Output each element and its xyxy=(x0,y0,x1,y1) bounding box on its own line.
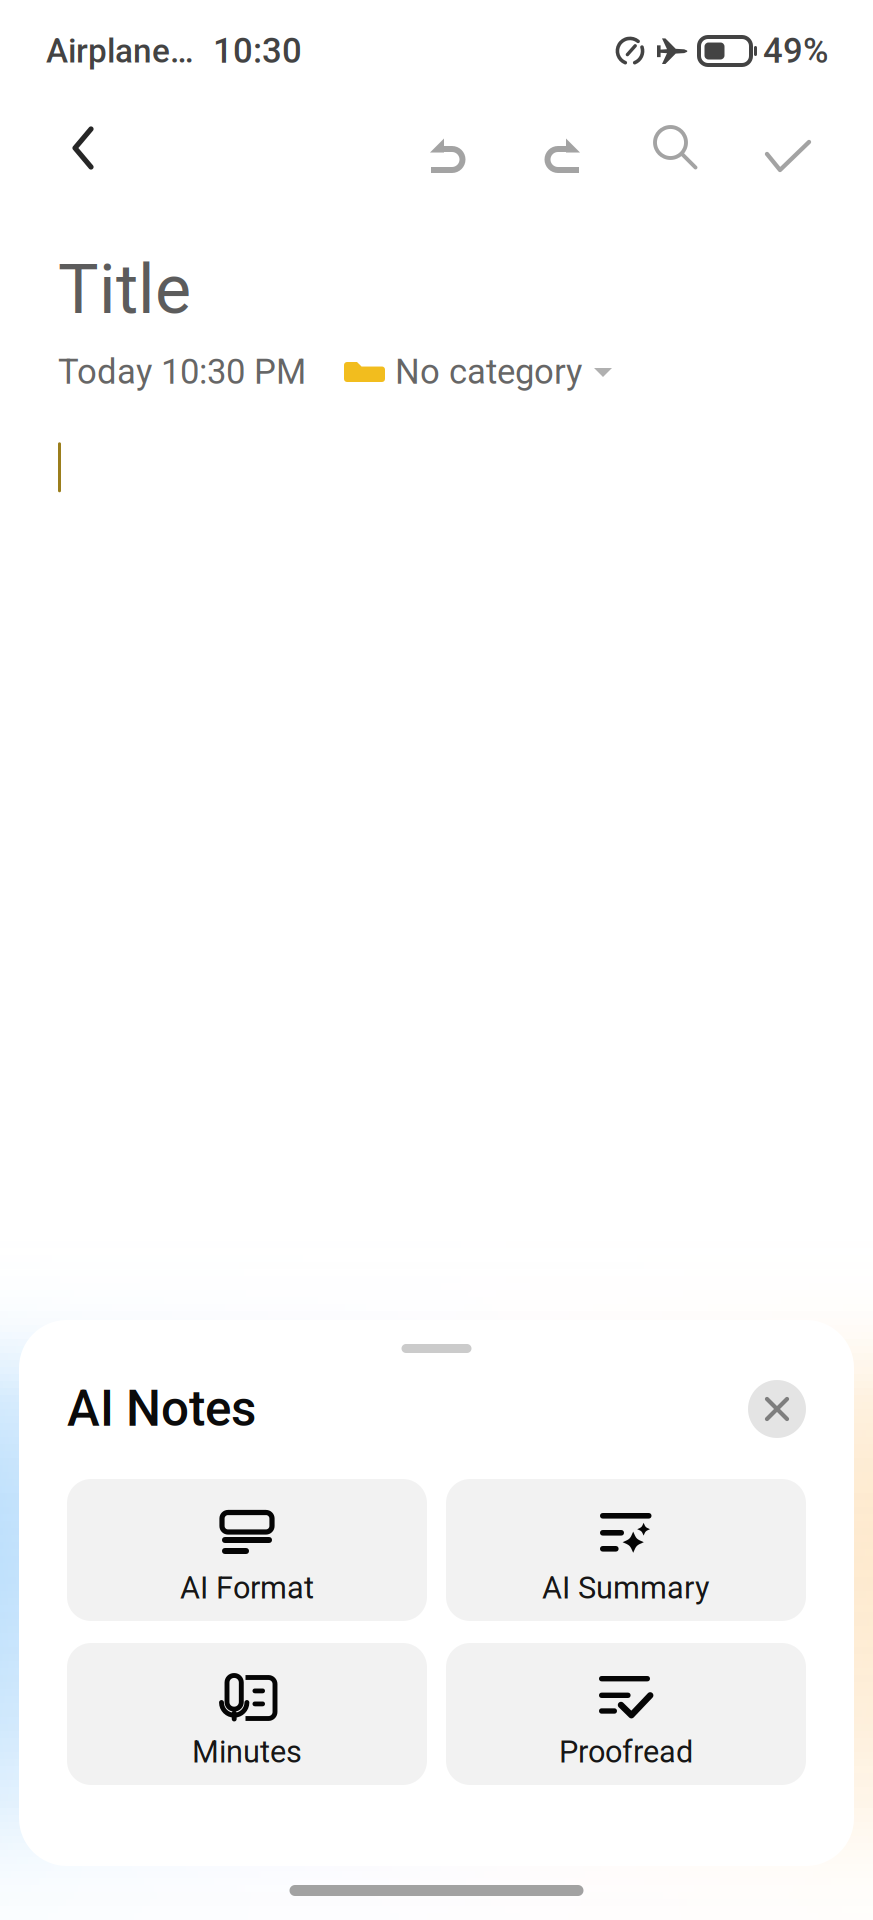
button[interactable]: AI Summary xyxy=(446,1479,806,1621)
staticText: Airplane… xyxy=(46,31,194,71)
button[interactable]: Proofread xyxy=(446,1643,806,1785)
staticText: Proofread xyxy=(559,1734,693,1770)
button[interactable]: Done xyxy=(752,120,824,192)
staticText: 10:30 xyxy=(213,31,302,71)
staticText: 49% xyxy=(763,31,829,71)
staticText: Title xyxy=(58,250,191,330)
staticText: Minutes xyxy=(192,1734,302,1770)
staticText: AI Summary xyxy=(542,1570,710,1606)
button[interactable]: AI Format xyxy=(67,1479,427,1621)
button[interactable]: Back xyxy=(47,112,119,184)
staticText: Today 10:30 PM xyxy=(58,352,306,392)
staticText: AI Format xyxy=(180,1570,314,1606)
button[interactable]: No category xyxy=(343,352,614,392)
button[interactable]: Undo xyxy=(413,119,485,191)
staticText: No category xyxy=(395,352,582,392)
staticText: AI Notes xyxy=(67,1380,256,1438)
button[interactable]: Minutes xyxy=(67,1643,427,1785)
button[interactable]: Close xyxy=(748,1380,806,1438)
button[interactable]: Search xyxy=(639,111,711,183)
button[interactable]: Redo xyxy=(525,119,597,191)
